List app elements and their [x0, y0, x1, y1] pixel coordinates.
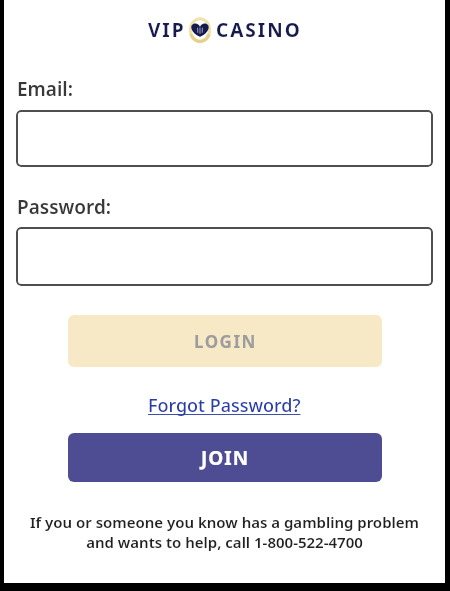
button[interactable]: LOGIN: [68, 315, 382, 367]
staticText: CASINO: [216, 17, 302, 43]
button[interactable]: [16, 227, 433, 286]
button[interactable]: [16, 110, 433, 167]
staticText: LOGIN: [194, 330, 257, 353]
staticText: If you or someone you know has a gamblin…: [4, 512, 445, 552]
staticText: JOIN: [201, 445, 250, 471]
staticText: Email:: [17, 76, 73, 102]
button[interactable]: JOIN: [68, 433, 382, 482]
staticText: Password:: [17, 194, 112, 220]
button[interactable]: Forgot Password?: [148, 393, 301, 418]
staticText: VIP: [148, 17, 186, 43]
